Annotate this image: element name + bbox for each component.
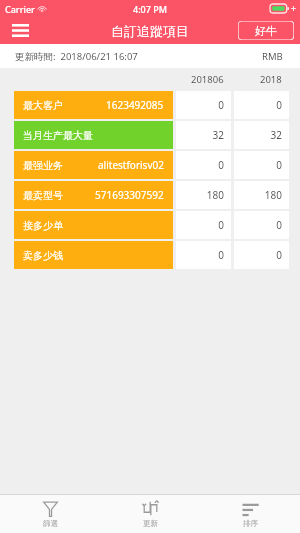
other: Filter <box>42 500 59 517</box>
other: Refresh <box>142 500 159 517</box>
staticText: 卖多少钱 <box>23 249 63 262</box>
button[interactable]: 最卖型号 <box>0 181 300 209</box>
staticText: 更新時間: 2018/06/21 16:07 <box>15 50 138 63</box>
staticText: 好牛 <box>255 24 277 38</box>
staticText: 0 <box>218 218 224 232</box>
staticText: 排序 <box>243 519 258 528</box>
staticText: 201806 <box>191 73 224 86</box>
staticText: 571693307592 <box>95 188 164 202</box>
button[interactable]: 好牛 <box>238 21 294 40</box>
staticText: 32 <box>212 128 224 142</box>
staticText: 4:07 PM <box>133 3 167 15</box>
staticText: 32 <box>270 128 282 142</box>
staticText: 0 <box>218 158 224 172</box>
button[interactable]: Menu <box>0 19 41 42</box>
staticText: 当月生产最大量 <box>23 129 93 142</box>
staticText: 0 <box>276 218 282 232</box>
staticText: 180 <box>264 188 282 202</box>
staticText: 0 <box>276 248 282 262</box>
staticText: 最强业务 <box>23 159 63 172</box>
staticText: 篩選 <box>43 519 58 528</box>
other: Sort <box>242 500 259 517</box>
staticText: 0 <box>218 248 224 262</box>
button[interactable]: 接多少单 <box>0 211 300 239</box>
staticText: 最大客户 <box>23 99 63 112</box>
staticText: 0 <box>218 98 224 112</box>
staticText: 接多少单 <box>23 219 63 232</box>
button[interactable]: 最强业务 <box>0 151 300 179</box>
staticText: Carrier <box>5 3 35 15</box>
button[interactable]: 卖多少钱 <box>0 241 300 269</box>
button[interactable]: Filter <box>0 495 100 533</box>
staticText: 0 <box>276 158 282 172</box>
staticText: 180 <box>206 188 224 202</box>
staticText: 1623492085 <box>106 98 164 112</box>
button[interactable]: 当月生产最大量 <box>0 121 300 149</box>
staticText: 0 <box>276 98 282 112</box>
staticText: alitestforisv02 <box>98 158 164 172</box>
staticText: 自訂追蹤項目 <box>111 23 189 39</box>
staticText: 更新 <box>143 519 158 528</box>
staticText: RMB <box>262 50 283 63</box>
staticText: 2018 <box>260 73 282 86</box>
button[interactable]: Sort <box>200 495 300 533</box>
button[interactable]: Refresh <box>100 495 200 533</box>
button[interactable]: 最大客户 <box>0 91 300 119</box>
staticText: 最卖型号 <box>23 189 63 202</box>
